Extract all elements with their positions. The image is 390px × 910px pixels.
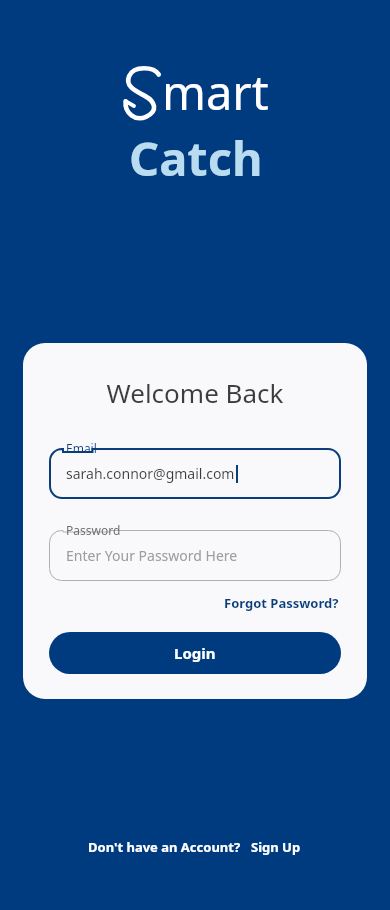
- staticText: Enter Your Password Here: [66, 546, 238, 565]
- button[interactable]: Login: [49, 632, 341, 674]
- staticText: Email: [66, 440, 97, 456]
- staticText: mart: [162, 60, 269, 124]
- button[interactable]: Password: [49, 521, 341, 581]
- other: Smart Catch logo: [122, 64, 162, 124]
- staticText: Password: [66, 522, 121, 538]
- button[interactable]: Email: [49, 439, 341, 499]
- staticText: sarah.connor@gmail.com: [66, 464, 235, 483]
- staticText: Forgot Password?: [224, 594, 339, 612]
- staticText: Sign Up: [251, 838, 301, 856]
- staticText: Login: [174, 643, 216, 663]
- button[interactable]: Sign Up: [249, 836, 303, 858]
- staticText: Welcome Back: [49, 375, 341, 410]
- staticText: Don't have an Account?: [88, 838, 241, 856]
- staticText: Catch: [129, 126, 263, 185]
- button[interactable]: Forgot Password?: [222, 592, 341, 614]
